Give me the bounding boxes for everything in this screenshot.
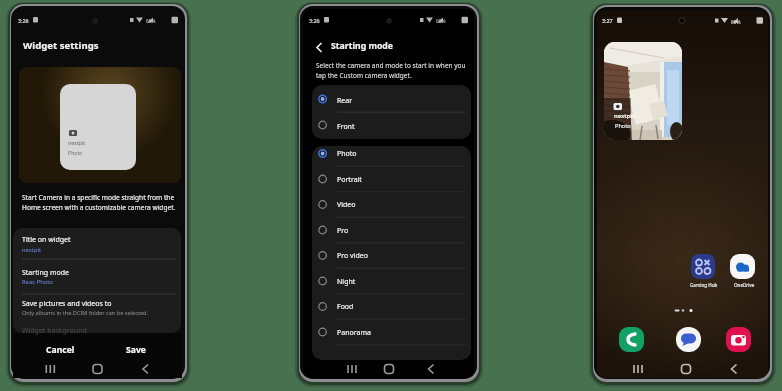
staticText: 3:27 xyxy=(602,17,613,24)
button[interactable] xyxy=(676,327,701,352)
staticText: Photo xyxy=(337,149,357,159)
button[interactable] xyxy=(13,259,181,286)
button[interactable] xyxy=(726,327,751,352)
button[interactable]: Pro xyxy=(312,218,471,243)
staticText: Pro video xyxy=(337,251,368,261)
staticText: Pro xyxy=(337,226,349,236)
staticText: OneDrive xyxy=(734,282,755,288)
staticText: Save xyxy=(126,344,146,356)
staticText: 65% xyxy=(731,19,741,26)
button[interactable]: Night xyxy=(312,269,471,294)
staticText: Photo xyxy=(68,149,83,156)
staticText: Front xyxy=(337,122,355,132)
button[interactable] xyxy=(115,338,155,356)
button[interactable] xyxy=(619,327,644,352)
staticText: tap the Custom camera widget. xyxy=(316,71,412,80)
staticText: nextpit xyxy=(614,112,635,120)
staticText: Home screen with a customizable camera w… xyxy=(22,203,176,212)
staticText: Rear, Photo xyxy=(22,278,53,286)
button[interactable] xyxy=(13,230,181,257)
button[interactable] xyxy=(730,254,755,279)
staticText: Cancel xyxy=(46,344,75,356)
button[interactable] xyxy=(691,254,715,279)
staticText: 3:26 xyxy=(18,17,29,24)
staticText: Widget settings xyxy=(23,39,99,52)
staticText: Start Camera in a specific mode straight… xyxy=(22,193,175,202)
staticText: Video xyxy=(337,200,356,210)
button[interactable]: Pro video xyxy=(312,243,471,268)
button[interactable]: Video xyxy=(312,192,471,217)
button[interactable] xyxy=(13,290,181,318)
staticText: Save pictures and videos to xyxy=(22,299,112,309)
staticText: Panorama xyxy=(337,328,371,338)
staticText: 3:26 xyxy=(309,17,320,24)
staticText: Rear xyxy=(337,96,353,106)
button[interactable] xyxy=(312,112,471,139)
staticText: Select the camera and mode to start in w… xyxy=(316,61,466,70)
staticText: 65% xyxy=(436,18,446,25)
button[interactable] xyxy=(312,85,471,112)
button[interactable]: Photo xyxy=(312,141,471,166)
staticText: 65% xyxy=(146,18,156,25)
staticText: Food xyxy=(337,302,354,312)
staticText: Title on widget xyxy=(22,235,71,245)
staticText: Widget background xyxy=(22,326,87,336)
button[interactable]: nextpit xyxy=(604,42,682,140)
staticText: Portrait xyxy=(337,175,362,185)
staticText: Starting mode xyxy=(331,40,393,52)
staticText: Starting mode xyxy=(22,268,70,278)
button[interactable]: Panorama xyxy=(312,320,471,345)
staticText: Only albums in the DCIM folder can be se… xyxy=(22,309,149,317)
button[interactable]: Food xyxy=(312,294,471,319)
staticText: Night xyxy=(337,277,356,287)
staticText: Gaming Hub xyxy=(690,282,718,288)
staticText: Photo xyxy=(615,122,631,130)
button[interactable] xyxy=(30,338,80,356)
button[interactable]: nextpit xyxy=(60,84,136,170)
staticText: nextpit xyxy=(22,246,42,254)
button[interactable]: Portrait xyxy=(312,167,471,192)
staticText: nextpit xyxy=(68,139,86,146)
